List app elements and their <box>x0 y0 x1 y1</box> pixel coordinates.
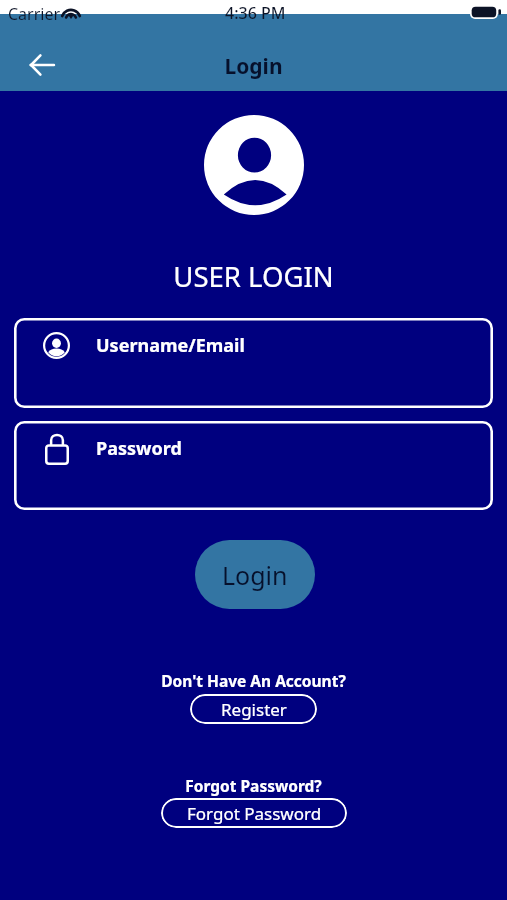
staticText: Don't Have An Account? <box>0 670 507 691</box>
staticText: USER LOGIN <box>0 258 507 295</box>
staticText: Forgot Password <box>187 802 322 825</box>
staticText: Register <box>221 698 287 721</box>
staticText: Forgot Password? <box>0 775 507 796</box>
button[interactable]: Login <box>195 540 315 609</box>
staticText: Password <box>96 436 182 461</box>
staticText: Login <box>0 52 507 81</box>
staticText: 4:36 PM <box>225 2 286 24</box>
button[interactable]: Register <box>190 694 317 724</box>
staticText: Username/Email <box>96 333 245 358</box>
staticText: Carrier <box>8 3 61 25</box>
button[interactable]: Back <box>19 42 65 88</box>
button[interactable]: Username/Email <box>14 318 493 408</box>
button[interactable]: Forgot Password <box>161 798 347 828</box>
button[interactable]: Password <box>14 421 493 510</box>
staticText: Login <box>222 558 288 592</box>
